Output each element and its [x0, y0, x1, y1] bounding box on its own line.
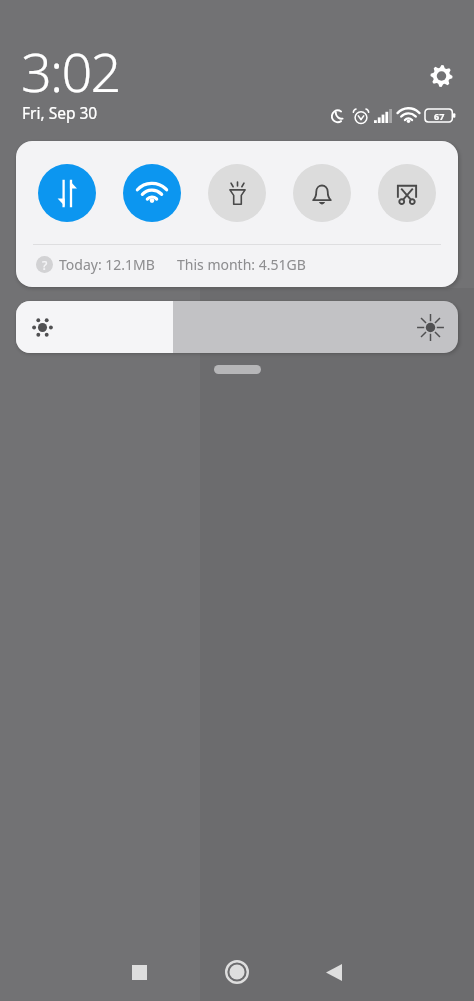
button[interactable]: Home	[209, 944, 265, 1000]
button[interactable]: Screenshot	[378, 164, 436, 222]
button[interactable]: Wi-Fi	[123, 164, 181, 222]
staticText: 3:02	[21, 34, 120, 108]
staticText: ?	[42, 257, 48, 273]
button[interactable]: Brightness	[16, 301, 458, 353]
staticText: Fri, Sep 30	[22, 102, 98, 123]
button[interactable]: Flashlight	[208, 164, 266, 222]
button[interactable]: Back	[306, 944, 362, 1000]
button[interactable]: Data usage help	[36, 256, 53, 273]
staticText: This month: 4.51GB	[177, 255, 306, 274]
staticText: Today: 12.1MB	[59, 255, 155, 274]
button[interactable]: Recents	[111, 944, 167, 1000]
staticText: 67	[434, 110, 445, 122]
button[interactable]: Settings	[430, 65, 453, 87]
button[interactable]: Silent	[293, 164, 351, 222]
button[interactable]: Mobile data	[38, 164, 96, 222]
